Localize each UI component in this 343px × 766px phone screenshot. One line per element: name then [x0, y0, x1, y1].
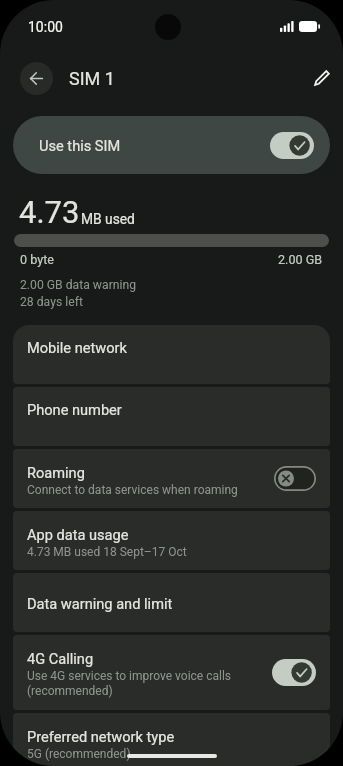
staticText: Mobile network [27, 340, 127, 357]
button[interactable]: Preferred network type [13, 713, 330, 766]
staticText: 10:00 [28, 19, 63, 35]
staticText: Data warning and limit [27, 596, 173, 613]
button[interactable]: Roaming [13, 449, 330, 508]
button[interactable]: Use this SIM [13, 116, 330, 174]
staticText: SIM 1 [69, 68, 115, 89]
staticText: Roaming [27, 465, 85, 482]
staticText: Phone number [27, 402, 122, 419]
staticText: 4.73 [19, 194, 80, 230]
staticText: 4G Calling [27, 651, 94, 668]
button[interactable]: Phone number [13, 387, 330, 446]
button[interactable]: Data warning and limit [13, 573, 330, 632]
button[interactable]: App data usage [13, 511, 330, 570]
staticText: MB used [81, 211, 135, 227]
staticText: 28 days left [20, 295, 83, 309]
staticText: 4.73 MB used 18 Sept–17 Oct [27, 544, 187, 559]
staticText: 5G (recommended) [27, 746, 131, 761]
button[interactable]: 4G Calling [13, 635, 330, 710]
button[interactable]: Edit SIM name [302, 58, 342, 98]
button[interactable]: Mobile network [13, 325, 330, 384]
staticText: Use 4G services to improve voice calls (… [27, 668, 232, 698]
button[interactable]: Back [20, 62, 53, 95]
staticText: App data usage [27, 527, 129, 544]
staticText: 0 byte [20, 252, 54, 267]
staticText: 2.00 GB [278, 252, 323, 267]
staticText: Preferred network type [27, 729, 175, 746]
staticText: Connect to data services when roaming [27, 482, 238, 497]
staticText: 2.00 GB data warning [20, 278, 137, 292]
staticText: Use this SIM [39, 137, 121, 154]
